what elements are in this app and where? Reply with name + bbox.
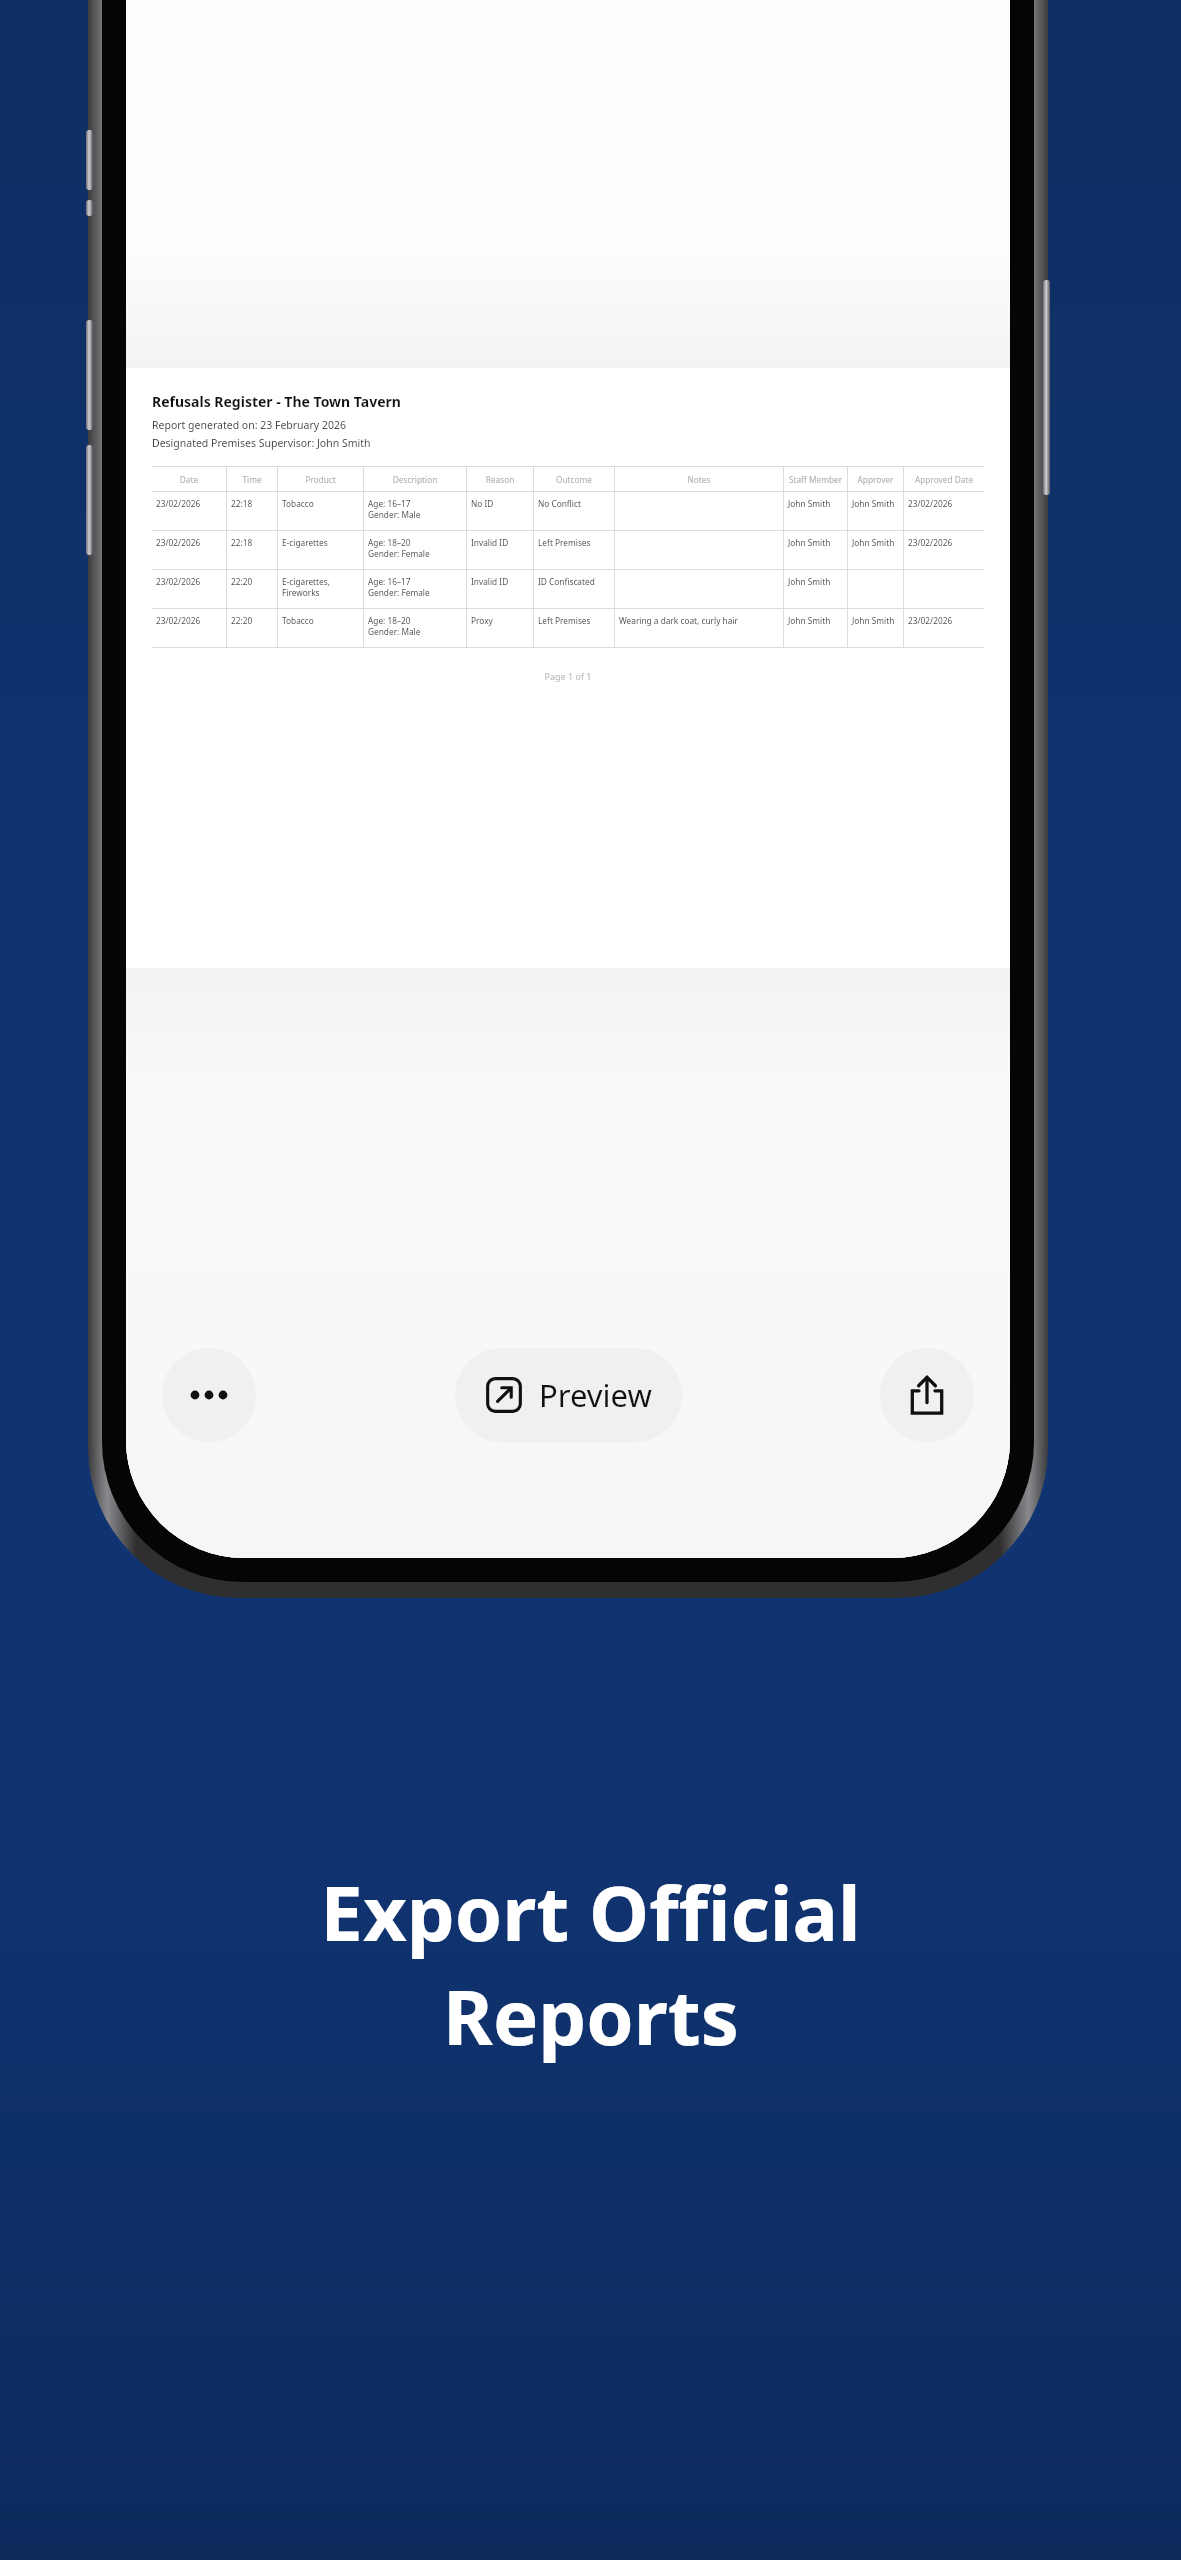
staticText: Export Official bbox=[320, 1860, 861, 1964]
staticText: 22:20 bbox=[231, 576, 253, 587]
staticText: Proxy bbox=[471, 615, 493, 626]
staticText: Age: 16–17 Gender: Male bbox=[368, 498, 421, 521]
staticText: Preview bbox=[539, 1374, 652, 1416]
staticText: No Conflict bbox=[538, 498, 581, 509]
staticText: Outcome bbox=[535, 474, 613, 485]
staticText: Refusals Register - The Town Tavern bbox=[152, 392, 401, 411]
staticText: Approved Date bbox=[905, 474, 983, 485]
staticText: Approver bbox=[849, 474, 902, 485]
staticText: Date bbox=[153, 474, 225, 485]
staticText: Product bbox=[279, 474, 362, 485]
staticText: Report generated on: 23 February 2026 bbox=[152, 418, 346, 432]
staticText: Notes bbox=[616, 474, 782, 485]
staticText: John Smith bbox=[852, 537, 895, 548]
staticText: Age: 16–17 Gender: Female bbox=[368, 576, 430, 599]
staticText: ID Confiscated bbox=[538, 576, 595, 587]
staticText: Tobacco bbox=[282, 615, 314, 626]
staticText: Time bbox=[228, 474, 276, 485]
staticText: John Smith bbox=[788, 537, 831, 548]
staticText: 22:18 bbox=[231, 537, 253, 548]
staticText: Left Premises bbox=[538, 537, 591, 548]
staticText: Wearing a dark coat, curly hair bbox=[619, 615, 738, 626]
staticText: E-cigarettes bbox=[282, 537, 328, 548]
staticText: Age: 18–20 Gender: Male bbox=[368, 615, 421, 638]
staticText: John Smith bbox=[788, 576, 831, 587]
staticText: E-cigarettes, Fireworks bbox=[282, 576, 330, 599]
staticText: 22:18 bbox=[231, 498, 253, 509]
staticText: Page 1 of 1 bbox=[152, 670, 984, 682]
staticText: Tobacco bbox=[282, 498, 314, 509]
button[interactable]: Preview bbox=[455, 1348, 682, 1442]
staticText: 23/02/2026 bbox=[156, 576, 201, 587]
staticText: John Smith bbox=[788, 498, 831, 509]
staticText: 23/02/2026 bbox=[908, 537, 953, 548]
staticText: John Smith bbox=[788, 615, 831, 626]
staticText: No ID bbox=[471, 498, 494, 509]
staticText: 23/02/2026 bbox=[156, 537, 201, 548]
staticText: Designated Premises Supervisor: John Smi… bbox=[152, 436, 371, 450]
staticText: Staff Member bbox=[785, 474, 846, 485]
staticText: 23/02/2026 bbox=[908, 498, 953, 509]
button[interactable]: More options bbox=[162, 1348, 256, 1442]
staticText: Invalid ID bbox=[471, 576, 509, 587]
staticText: John Smith bbox=[852, 498, 895, 509]
staticText: 22:20 bbox=[231, 615, 253, 626]
staticText: Left Premises bbox=[538, 615, 591, 626]
button[interactable]: Share bbox=[880, 1348, 974, 1442]
staticText: Reason bbox=[468, 474, 532, 485]
staticText: Reports bbox=[443, 1964, 739, 2068]
staticText: Age: 18–20 Gender: Female bbox=[368, 537, 430, 560]
staticText: Description bbox=[365, 474, 465, 485]
staticText: 23/02/2026 bbox=[156, 615, 201, 626]
staticText: 23/02/2026 bbox=[156, 498, 201, 509]
staticText: 23/02/2026 bbox=[908, 615, 953, 626]
staticText: Invalid ID bbox=[471, 537, 509, 548]
staticText: John Smith bbox=[852, 615, 895, 626]
